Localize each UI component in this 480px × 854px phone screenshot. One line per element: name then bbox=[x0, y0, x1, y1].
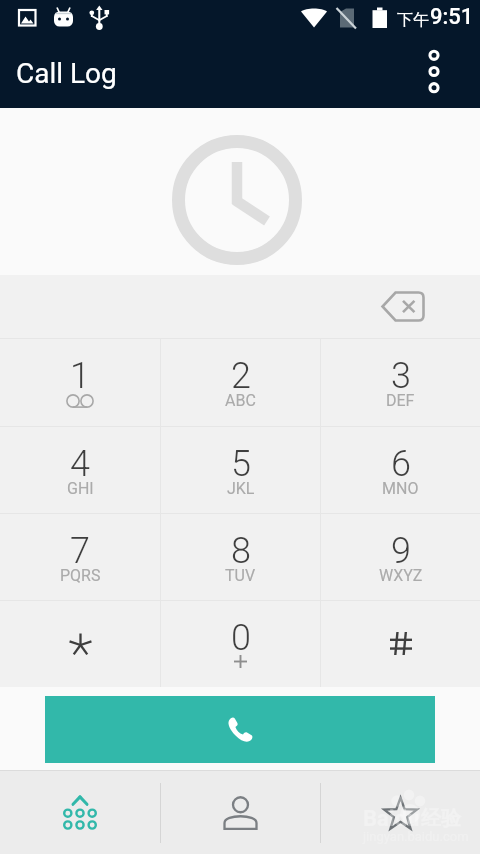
button[interactable]: Favorites bbox=[321, 771, 480, 854]
staticText: 3 bbox=[391, 355, 411, 397]
staticText: Call Log bbox=[16, 57, 117, 90]
staticText: jingyan.baidu.com bbox=[363, 829, 469, 844]
staticText: ABC bbox=[225, 391, 256, 410]
staticText: 7 bbox=[70, 530, 90, 572]
button[interactable] bbox=[0, 601, 160, 687]
staticText: 5 bbox=[231, 443, 251, 485]
staticText: PQRS bbox=[60, 566, 101, 585]
button[interactable]: 2 bbox=[161, 339, 320, 426]
staticText: WXYZ bbox=[379, 566, 423, 585]
staticText: 4 bbox=[70, 443, 90, 485]
staticText: DEF bbox=[386, 391, 415, 410]
button[interactable]: 8 bbox=[161, 514, 320, 600]
button[interactable]: Call bbox=[45, 696, 435, 763]
staticText: 1 bbox=[70, 355, 90, 397]
staticText: 2 bbox=[231, 355, 251, 397]
staticText: 8 bbox=[231, 530, 251, 572]
staticText: JKL bbox=[227, 479, 255, 498]
button[interactable]: 7 bbox=[0, 514, 160, 600]
button[interactable]: 4 bbox=[0, 427, 160, 513]
button[interactable]: 9 bbox=[321, 514, 480, 600]
button[interactable]: 6 bbox=[321, 427, 480, 513]
staticText: 9:51 bbox=[430, 4, 474, 30]
staticText: 0 bbox=[231, 617, 251, 659]
staticText: TUV bbox=[225, 566, 256, 585]
button[interactable]: 3 bbox=[321, 339, 480, 426]
button[interactable]: 5 bbox=[161, 427, 320, 513]
button[interactable]: More options bbox=[418, 40, 480, 108]
button[interactable]: Contacts bbox=[161, 771, 320, 854]
staticText: MNO bbox=[382, 479, 419, 498]
button[interactable]: 0 bbox=[161, 601, 320, 687]
staticText: Baidu bbox=[363, 806, 420, 832]
staticText: 下午 bbox=[397, 10, 429, 30]
button[interactable] bbox=[321, 601, 480, 687]
staticText: 9 bbox=[391, 530, 411, 572]
button[interactable]: Backspace bbox=[361, 275, 445, 338]
button[interactable]: 1 bbox=[0, 339, 160, 426]
staticText: GHI bbox=[67, 479, 94, 498]
button[interactable]: Dialpad bbox=[0, 771, 160, 854]
staticText: 6 bbox=[391, 443, 411, 485]
